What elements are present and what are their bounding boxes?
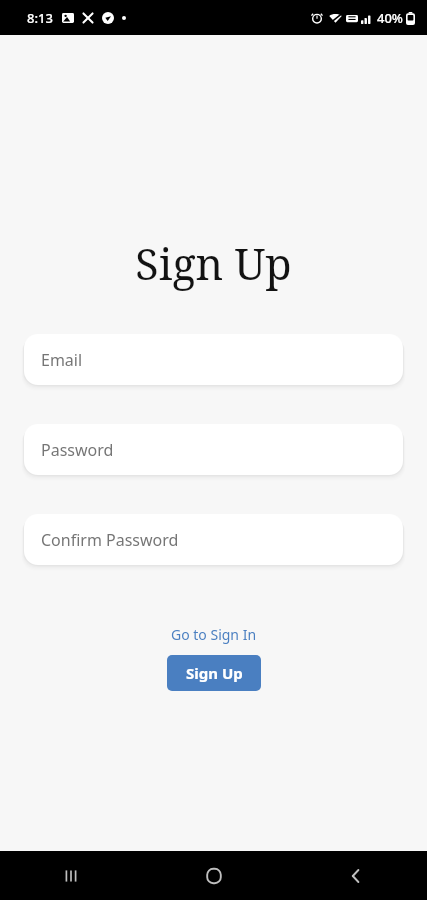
button[interactable]: Recent apps <box>0 851 143 900</box>
staticText: 40% <box>377 9 403 27</box>
staticText: Password <box>41 439 114 461</box>
button[interactable]: Confirm Password <box>24 514 403 565</box>
button[interactable]: Home <box>143 851 285 900</box>
staticText: Sign Up <box>135 234 292 293</box>
staticText: Sign Up <box>186 663 243 683</box>
staticText: Confirm Password <box>41 529 179 551</box>
button[interactable]: Email <box>24 334 403 385</box>
button[interactable]: Go to Sign In <box>165 623 263 646</box>
staticText: Email <box>41 349 83 371</box>
button[interactable]: Sign Up <box>167 655 261 691</box>
staticText: Go to Sign In <box>171 625 257 644</box>
staticText: 8:13 <box>27 9 53 27</box>
button[interactable]: Password <box>24 424 403 475</box>
button[interactable]: Back <box>285 851 427 900</box>
